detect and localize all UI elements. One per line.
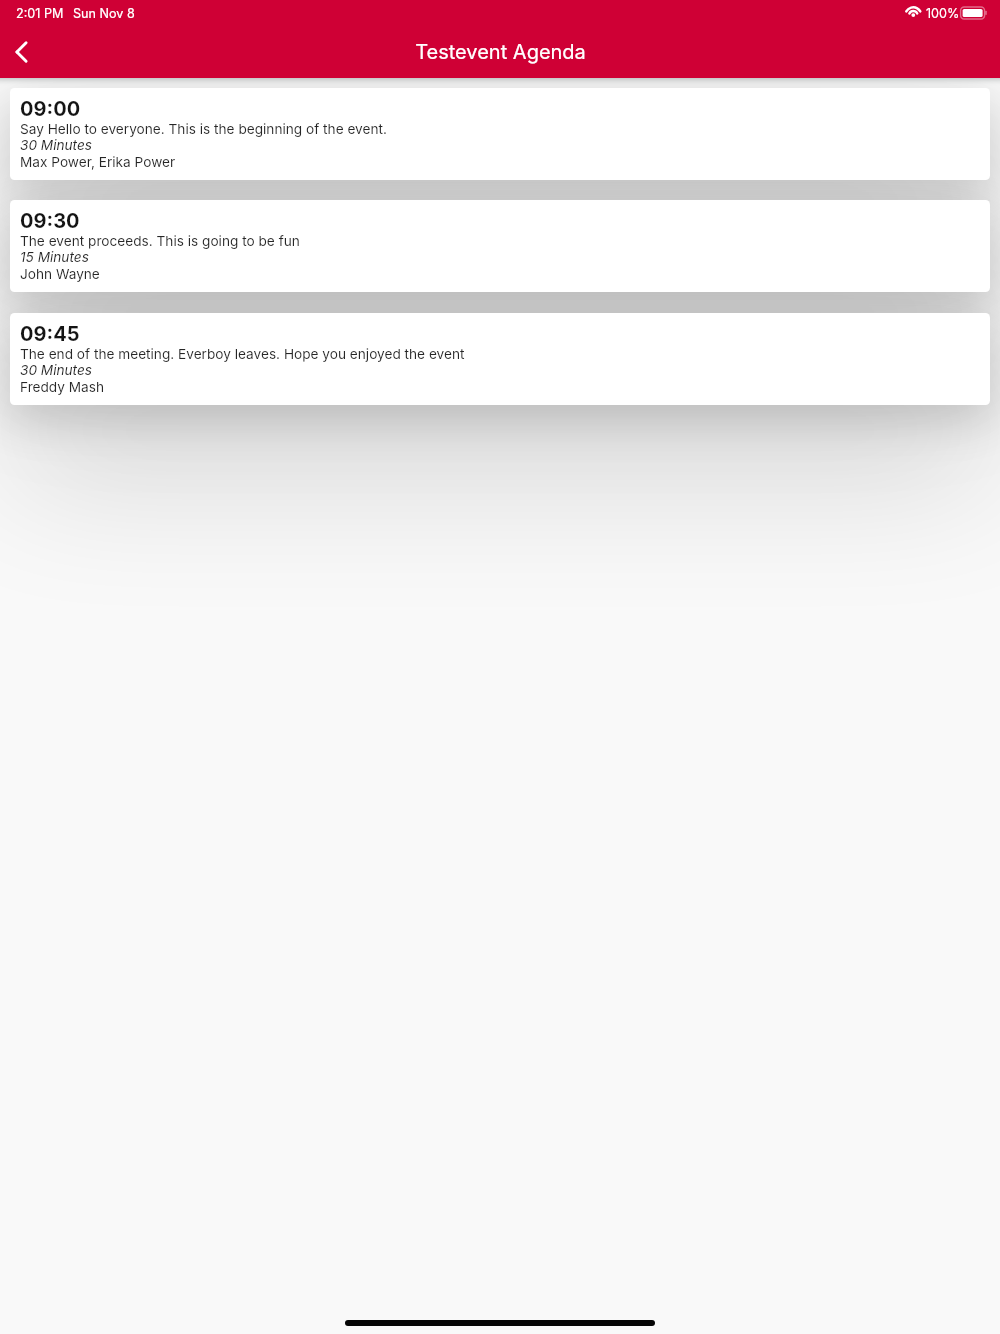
- staticText: Say Hello to everyone. This is the begin…: [20, 121, 387, 138]
- button[interactable]: 09:30: [10, 200, 990, 292]
- staticText: 09:00: [20, 97, 81, 121]
- button[interactable]: 09:45: [10, 313, 990, 405]
- staticText: Freddy Mash: [20, 379, 105, 396]
- staticText: 30 Minutes: [20, 362, 93, 379]
- staticText: Testevent Agenda: [415, 40, 586, 64]
- staticText: The end of the meeting. Everboy leaves. …: [20, 346, 465, 363]
- staticText: 2:01 PM: [16, 6, 64, 21]
- staticText: Max Power, Erika Power: [20, 154, 176, 171]
- staticText: The event proceeds. This is going to be …: [20, 233, 300, 250]
- button[interactable]: 09:00: [10, 88, 990, 180]
- staticText: 09:30: [20, 209, 80, 233]
- staticText: 09:45: [20, 322, 80, 346]
- staticText: 15 Minutes: [20, 249, 89, 266]
- staticText: John Wayne: [20, 266, 100, 283]
- button[interactable]: Back: [0, 28, 48, 76]
- staticText: Sun Nov 8: [73, 6, 135, 21]
- staticText: 100%: [926, 6, 960, 21]
- staticText: 30 Minutes: [20, 137, 93, 154]
